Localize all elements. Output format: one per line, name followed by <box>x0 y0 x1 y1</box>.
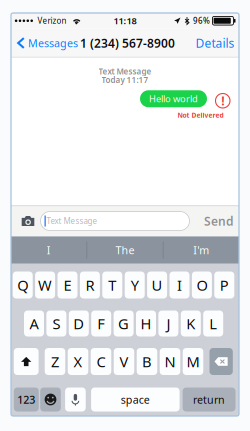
staticText: G <box>118 314 129 333</box>
staticText: B <box>142 352 152 371</box>
button[interactable]: Messages <box>17 31 78 55</box>
button[interactable]: Camera <box>18 212 38 230</box>
button[interactable]: K <box>181 310 201 336</box>
staticText: 96% <box>193 15 210 26</box>
staticText: P <box>220 275 229 295</box>
staticText: W <box>38 275 52 295</box>
button[interactable]: O <box>192 271 212 298</box>
button[interactable]: Emoji <box>40 387 61 411</box>
button[interactable]: P <box>214 271 234 298</box>
staticText: Z <box>51 352 59 371</box>
staticText: 123 <box>17 392 35 407</box>
staticText: S <box>52 314 60 333</box>
staticText: H <box>140 314 151 333</box>
button[interactable]: Numbers <box>14 387 39 411</box>
button[interactable]: I'm <box>164 236 239 263</box>
staticText: J <box>166 314 170 333</box>
staticText: L <box>209 314 217 333</box>
staticText: I'm <box>193 243 209 257</box>
staticText: U <box>152 275 163 295</box>
staticText: V <box>119 352 128 371</box>
button[interactable]: G <box>114 310 134 336</box>
staticText: Hello world <box>149 93 198 105</box>
button[interactable]: S <box>46 310 66 336</box>
staticText: Text Message <box>47 216 98 226</box>
staticText: F <box>97 314 105 333</box>
button[interactable]: Details <box>195 30 234 56</box>
staticText: return <box>193 392 225 407</box>
staticText: Y <box>131 275 139 295</box>
staticText: I <box>177 275 182 295</box>
button[interactable]: C <box>91 348 111 375</box>
staticText: X <box>73 352 82 371</box>
button[interactable]: Delete <box>209 348 233 375</box>
button[interactable]: Q <box>13 271 33 298</box>
button[interactable]: W <box>35 271 55 298</box>
staticText: D <box>73 314 84 333</box>
staticText: 11:18 <box>113 15 136 27</box>
button[interactable]: B <box>137 348 157 375</box>
button[interactable]: T <box>102 271 122 298</box>
staticText: O <box>196 275 207 295</box>
button[interactable]: F <box>91 310 111 336</box>
button[interactable]: R <box>80 271 100 298</box>
button[interactable]: Shift <box>14 348 39 375</box>
staticText: A <box>29 314 38 333</box>
button[interactable]: I <box>11 236 86 263</box>
staticText: E <box>63 275 71 295</box>
staticText: I <box>47 243 51 257</box>
button[interactable]: return <box>183 387 235 411</box>
button[interactable]: H <box>136 310 156 336</box>
button[interactable]: V <box>114 348 134 375</box>
staticText: M <box>186 352 199 371</box>
staticText: C <box>96 352 105 371</box>
button[interactable]: M <box>183 348 203 375</box>
staticText: Today 11:17 <box>101 75 148 85</box>
staticText: Q <box>17 275 28 295</box>
button[interactable]: U <box>147 271 167 298</box>
staticText: K <box>186 314 195 333</box>
button[interactable]: Dictation <box>65 387 86 411</box>
staticText: Messages <box>28 36 78 50</box>
button[interactable]: N <box>160 348 180 375</box>
staticText: space <box>121 392 150 407</box>
staticText: Not Delivered <box>177 111 223 120</box>
button[interactable]: J <box>158 310 178 336</box>
staticText: T <box>108 275 116 295</box>
button[interactable]: A <box>24 310 44 336</box>
staticText: Send <box>204 213 234 229</box>
staticText: Details <box>195 35 234 51</box>
button[interactable]: Send <box>204 209 234 233</box>
button[interactable]: E <box>57 271 77 298</box>
staticText: Verizon <box>38 15 67 26</box>
staticText: The <box>115 243 134 257</box>
staticText: N <box>164 352 175 371</box>
staticText: Text Message <box>98 66 151 77</box>
staticText: R <box>85 275 94 295</box>
button[interactable]: X <box>68 348 88 375</box>
staticText: ! <box>221 93 224 109</box>
button[interactable]: Y <box>125 271 145 298</box>
button[interactable]: L <box>203 310 223 336</box>
button[interactable]: D <box>69 310 89 336</box>
staticText: 1 (234) 567-8900 <box>80 35 175 51</box>
button[interactable]: space <box>91 387 180 411</box>
button[interactable]: Z <box>45 348 65 375</box>
button[interactable]: I <box>169 271 189 298</box>
button[interactable]: The <box>87 236 163 263</box>
